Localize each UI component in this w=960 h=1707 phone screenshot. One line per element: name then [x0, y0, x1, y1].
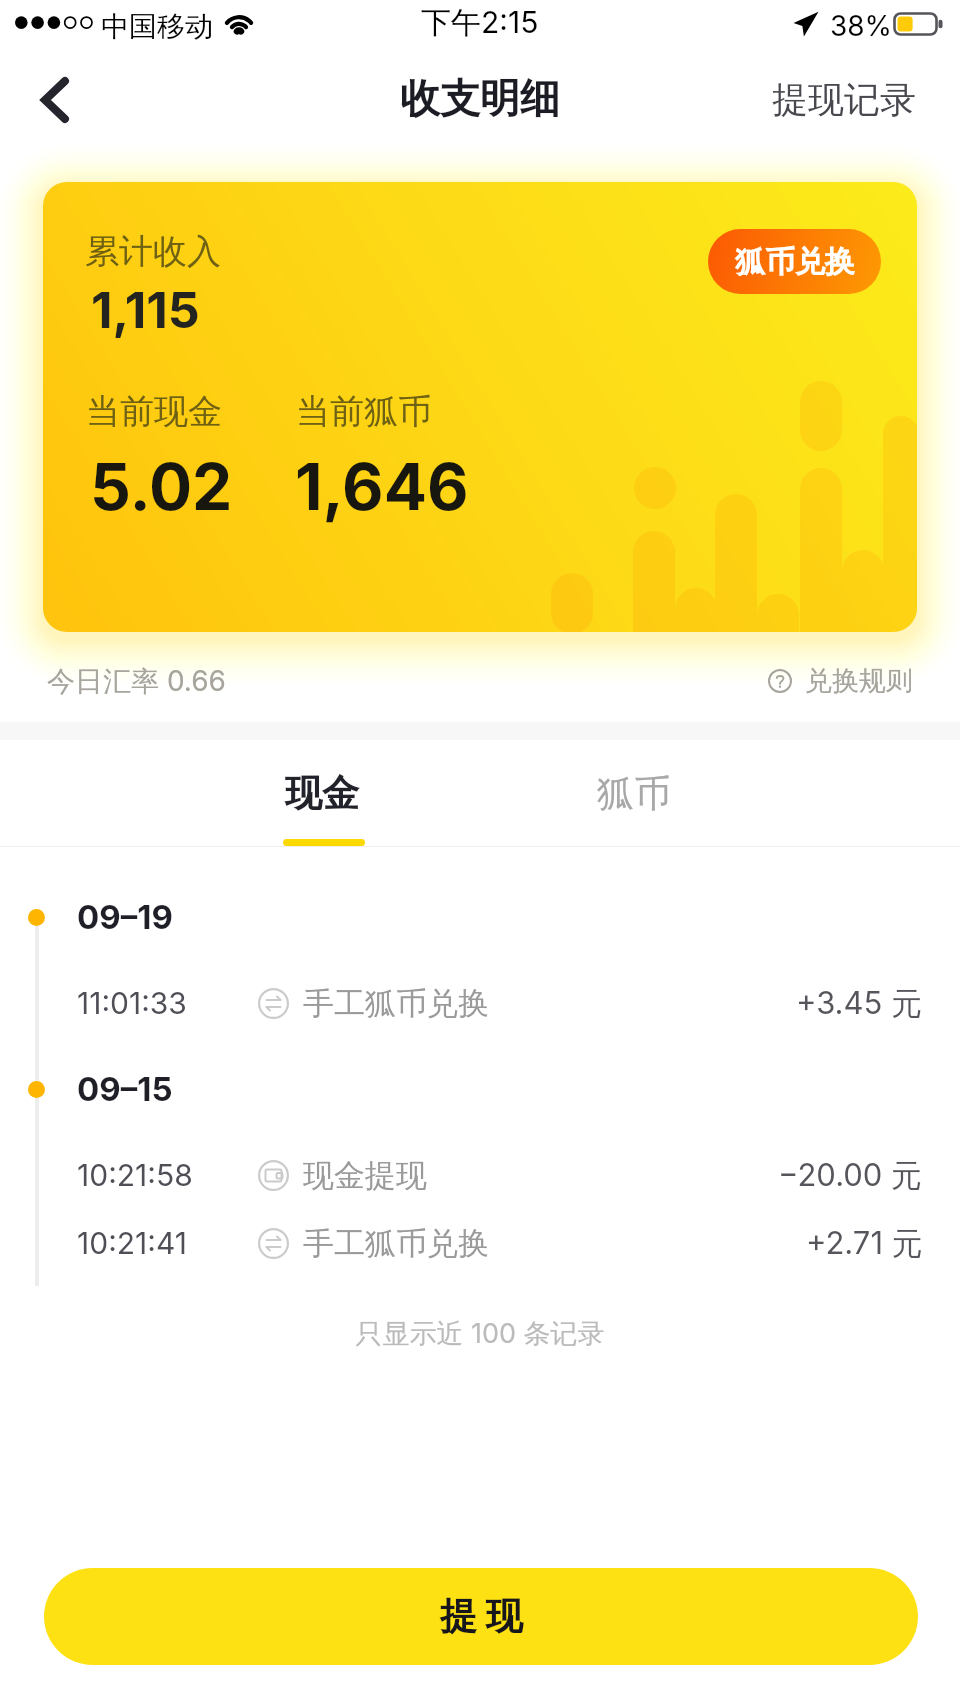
- staticText: 中国移动: [101, 9, 213, 44]
- staticText: 兑换规则: [805, 664, 913, 698]
- button[interactable]: 10:21:58: [0, 1141, 960, 1209]
- staticText: 累计收入: [85, 230, 221, 273]
- staticText: 提现记录: [772, 77, 916, 122]
- button[interactable]: 兑换规则: [768, 664, 913, 698]
- staticText: 只显示近 100 条记录: [0, 1317, 960, 1351]
- staticText: 5.02: [90, 448, 233, 525]
- staticText: 1,115: [91, 280, 200, 340]
- staticText: +3.45 元: [796, 984, 923, 1023]
- staticText: 手工狐币兑换: [303, 984, 489, 1023]
- staticText: 今日汇率 0.66: [47, 664, 226, 699]
- staticText: 09–15: [77, 1069, 173, 1109]
- staticText: +2.71 元: [806, 1224, 923, 1263]
- staticText: 38%: [830, 9, 893, 43]
- button[interactable]: 狐币兑换: [708, 229, 881, 294]
- staticText: 10:21:41: [77, 1225, 258, 1261]
- staticText: 现金提现: [303, 1156, 427, 1195]
- staticText: 当前现金: [86, 390, 222, 433]
- button[interactable]: 11:01:33: [0, 969, 960, 1037]
- staticText: 当前狐币: [296, 390, 432, 433]
- staticText: 狐币: [597, 770, 671, 817]
- button[interactable]: 提 现: [44, 1568, 918, 1665]
- button[interactable]: Back: [0, 52, 110, 147]
- staticText: 提 现: [440, 1593, 523, 1640]
- button[interactable]: 狐币: [554, 740, 714, 847]
- staticText: 下午2:15: [421, 4, 539, 42]
- staticText: 手工狐币兑换: [303, 1224, 489, 1263]
- button[interactable]: 提现记录: [744, 52, 960, 147]
- staticText: 1,646: [295, 448, 469, 525]
- staticText: 10:21:58: [77, 1157, 258, 1193]
- staticText: −20.00 元: [778, 1156, 923, 1195]
- staticText: 狐币兑换: [735, 243, 855, 281]
- staticText: 11:01:33: [77, 985, 258, 1021]
- staticText: 收支明细: [400, 73, 560, 123]
- staticText: 09–19: [77, 897, 173, 937]
- staticText: 现金: [285, 770, 359, 817]
- button[interactable]: 10:21:41: [0, 1209, 960, 1277]
- button[interactable]: 现金: [242, 740, 402, 847]
